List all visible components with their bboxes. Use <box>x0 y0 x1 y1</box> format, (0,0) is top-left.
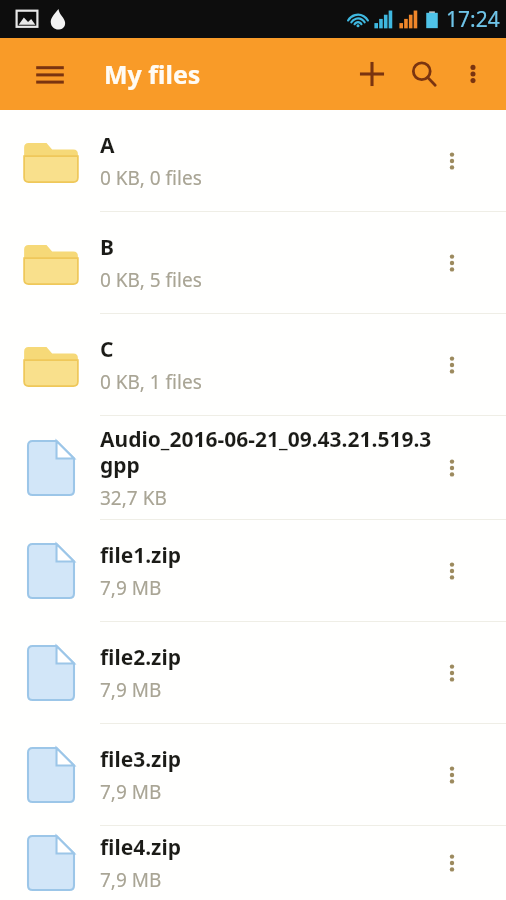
button[interactable]: More options <box>450 51 496 97</box>
button[interactable]: file2.zip <box>0 622 506 723</box>
button[interactable]: Item options <box>430 241 474 285</box>
staticText: My files <box>104 57 201 91</box>
staticText: Audio_2016-06-21_09.43.21.519.3gpp <box>100 425 436 480</box>
staticText: file1.zip <box>100 541 181 570</box>
button[interactable]: Search <box>398 48 450 100</box>
button[interactable]: Menu <box>26 50 74 98</box>
button[interactable]: C <box>0 314 506 415</box>
staticText: 7,9 MB <box>100 677 162 703</box>
staticText: 0 KB, 0 files <box>100 165 202 191</box>
staticText: 17:24 <box>446 5 500 34</box>
staticText: file2.zip <box>100 643 181 672</box>
button[interactable]: Item options <box>430 753 474 797</box>
button[interactable]: file1.zip <box>0 520 506 621</box>
staticText: A <box>100 131 115 160</box>
button[interactable]: Audio_2016-06-21_09.43.21.519.3gpp <box>0 416 506 519</box>
button[interactable]: Item options <box>430 651 474 695</box>
staticText: C <box>100 335 114 364</box>
staticText: 0 KB, 1 files <box>100 369 202 395</box>
staticText: file3.zip <box>100 745 181 774</box>
staticText: 7,9 MB <box>100 867 162 893</box>
button[interactable]: A <box>0 110 506 211</box>
button[interactable]: Item options <box>430 549 474 593</box>
staticText: B <box>100 233 114 262</box>
staticText: file4.zip <box>100 833 181 862</box>
button[interactable]: Item options <box>430 139 474 183</box>
button[interactable]: Item options <box>430 343 474 387</box>
button[interactable]: file4.zip <box>0 826 506 900</box>
button[interactable]: file3.zip <box>0 724 506 825</box>
button[interactable]: Item options <box>430 446 474 490</box>
staticText: 7,9 MB <box>100 575 162 601</box>
button[interactable]: Add <box>346 48 398 100</box>
button[interactable]: Item options <box>430 841 474 885</box>
button[interactable]: B <box>0 212 506 313</box>
staticText: 7,9 MB <box>100 779 162 805</box>
staticText: 0 KB, 5 files <box>100 267 202 293</box>
staticText: 32,7 KB <box>100 485 167 511</box>
